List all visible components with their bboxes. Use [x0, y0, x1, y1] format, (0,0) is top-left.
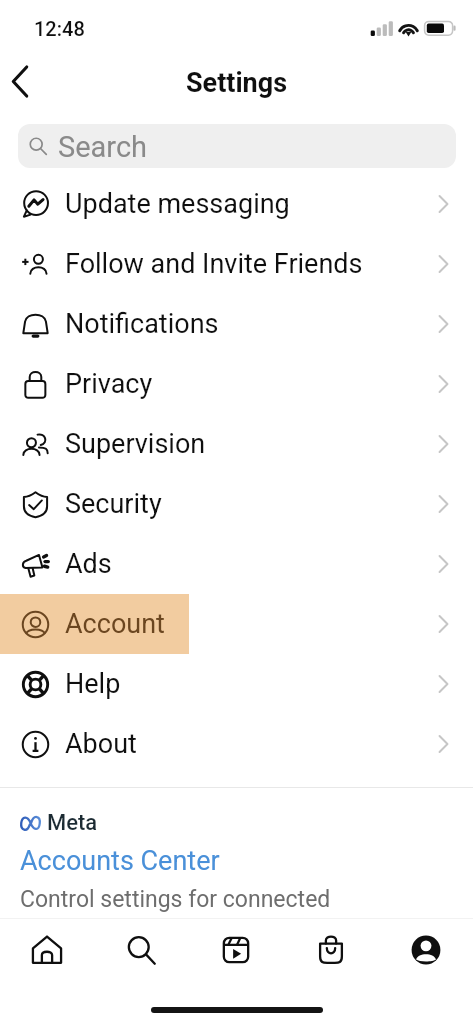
button[interactable]: Profile	[378, 920, 473, 980]
staticText: Search	[58, 130, 148, 164]
staticText: Help	[65, 668, 121, 700]
button[interactable]: Follow and Invite Friends	[0, 234, 473, 294]
button[interactable]: Shop	[283, 920, 378, 980]
button[interactable]: About	[0, 714, 473, 774]
button[interactable]: Search	[18, 124, 456, 168]
staticText: Privacy	[65, 368, 153, 400]
staticText: Account	[65, 608, 165, 640]
button[interactable]: Home	[0, 920, 94, 980]
button[interactable]: Account	[0, 594, 473, 654]
button[interactable]: Accounts Center	[20, 845, 220, 877]
button[interactable]: Privacy	[0, 354, 473, 414]
staticText: Meta	[47, 810, 98, 836]
button[interactable]: Update messaging	[0, 174, 473, 234]
button[interactable]: Security	[0, 474, 473, 534]
button[interactable]: Reels	[188, 920, 283, 980]
staticText: Follow and Invite Friends	[65, 248, 363, 280]
staticText: Settings	[186, 67, 288, 99]
button[interactable]: Supervision	[0, 414, 473, 474]
button[interactable]: Ads	[0, 534, 473, 594]
staticText: Security	[65, 488, 162, 520]
staticText: Ads	[65, 548, 112, 580]
staticText: Update messaging	[65, 188, 290, 220]
button[interactable]: Notifications	[0, 294, 473, 354]
staticText: Control settings for connected	[20, 886, 331, 913]
staticText: Supervision	[65, 428, 206, 460]
staticText: 12:48	[34, 17, 85, 40]
button[interactable]: Help	[0, 654, 473, 714]
staticText: About	[65, 728, 137, 760]
button[interactable]: Search	[94, 920, 188, 980]
button[interactable]: Back	[0, 55, 41, 107]
staticText: Notifications	[65, 308, 219, 340]
